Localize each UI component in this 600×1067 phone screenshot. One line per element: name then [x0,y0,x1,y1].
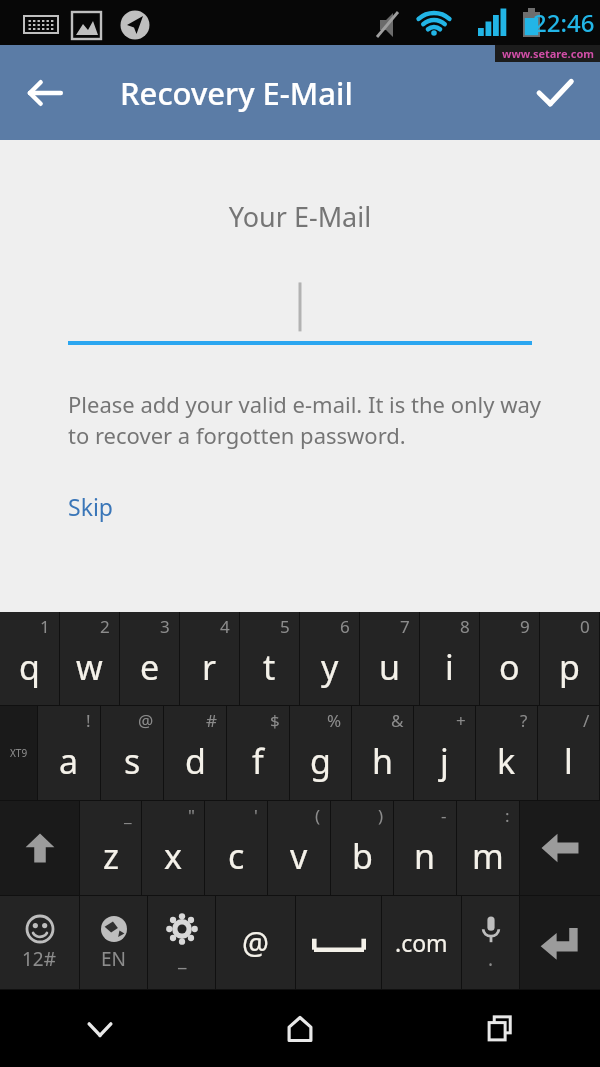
button[interactable]: Skip [68,491,113,522]
button[interactable]: + [414,706,475,800]
staticText: h [372,738,394,784]
staticText: z [103,833,119,879]
staticText: v [290,833,308,879]
button[interactable]: " [142,801,204,895]
staticText: a [59,738,79,784]
staticText: f [252,738,264,784]
staticText: 2 [100,615,110,638]
staticText: s [124,738,141,784]
button[interactable]: @ [216,896,295,989]
staticText: c [228,833,245,879]
staticText: 22:46 [533,6,595,39]
button[interactable]: # [164,706,226,800]
button[interactable]: 8 [420,612,479,705]
button[interactable]: Backspace [520,801,600,895]
button[interactable]: Space [296,896,381,989]
staticText: l [564,738,573,784]
staticText: @ [138,709,154,732]
staticText: 1 [40,615,50,638]
button[interactable]: - [394,801,456,895]
button[interactable]: Back [16,64,74,122]
staticText: $ [270,709,280,732]
staticText: 12# [22,946,57,972]
button[interactable]: Home [200,990,400,1067]
staticText: _ [178,946,187,972]
button[interactable]: / [538,706,599,800]
staticText: k [497,738,516,784]
button[interactable]: 1 [0,612,59,705]
staticText: ( [315,804,321,827]
staticText: Your E-Mail [0,198,600,235]
button[interactable]: ) [331,801,393,895]
staticText: ' [254,804,258,827]
staticText: 4 [220,615,230,638]
button[interactable]: Recent apps [400,990,600,1067]
button[interactable]: Settings [148,896,215,989]
staticText: t [263,644,276,690]
button[interactable]: 5 [240,612,299,705]
staticText: e [140,644,160,690]
staticText: 3 [160,615,170,638]
staticText: n [414,833,436,879]
button[interactable]: 0 [540,612,599,705]
staticText: @ [242,922,269,963]
staticText: " [188,804,195,827]
staticText: r [202,644,217,690]
staticText: / [583,709,590,732]
staticText: # [206,709,217,732]
button[interactable]: % [290,706,351,800]
button[interactable]: @ [101,706,163,800]
staticText: 9 [520,615,530,638]
button[interactable]: _ [80,801,141,895]
button[interactable]: 4 [180,612,239,705]
button[interactable]: Symbols [0,896,79,989]
button[interactable]: ? [476,706,537,800]
button[interactable] [68,277,532,345]
staticText: 6 [340,615,350,638]
button[interactable]: .com [382,896,461,989]
staticText: i [445,644,454,690]
button[interactable]: Enter [520,896,600,989]
staticText: ) [378,804,384,827]
staticText: o [499,644,520,690]
button[interactable]: $ [227,706,289,800]
button[interactable]: Shift [0,801,79,895]
staticText: Skip [68,491,113,522]
button[interactable]: & [352,706,413,800]
staticText: p [559,644,580,690]
staticText: Please add your valid e-mail. It is the … [68,389,542,451]
staticText: 5 [280,615,290,638]
button[interactable]: ( [268,801,330,895]
staticText: + [456,709,466,732]
staticText: & [391,709,404,732]
staticText: w [76,644,103,690]
staticText: y [321,644,339,690]
staticText: . [488,946,494,972]
button[interactable]: : [457,801,519,895]
button[interactable]: 9 [480,612,539,705]
button[interactable]: ' [205,801,267,895]
button[interactable]: ! [38,706,100,800]
staticText: u [379,644,401,690]
staticText: _ [124,804,132,827]
staticText: d [185,738,206,784]
staticText: ! [86,709,91,732]
button[interactable]: 3 [120,612,179,705]
staticText: m [472,833,504,879]
button[interactable]: Hide keyboard [0,990,200,1067]
staticText: g [310,738,331,784]
button[interactable]: Voice input [462,896,519,989]
staticText: 0 [580,615,590,638]
staticText: 7 [400,615,410,638]
button[interactable]: 7 [360,612,419,705]
button[interactable]: 2 [60,612,119,705]
staticText: : [505,804,510,827]
button[interactable]: XT9 [0,706,37,800]
staticText: % [327,709,342,732]
button[interactable]: Language [80,896,147,989]
staticText: x [164,833,182,879]
button[interactable]: 6 [300,612,359,705]
button[interactable]: Confirm [526,64,584,122]
staticText: EN [101,946,127,972]
staticText: q [19,644,40,690]
